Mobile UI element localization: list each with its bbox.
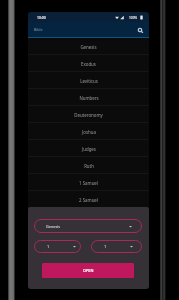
staticText: Exodus (81, 61, 96, 67)
staticText: Genesis (46, 224, 61, 229)
button[interactable]: 2 Samuel (28, 191, 149, 208)
staticText: Bible (34, 27, 43, 32)
staticText: 1 Samuel (79, 180, 98, 186)
staticText: 100% (129, 16, 138, 20)
button[interactable]: 1 Samuel (28, 174, 149, 191)
button[interactable]: Deuteronomy (28, 106, 149, 123)
staticText: Leviticus (80, 78, 98, 84)
staticText: Deuteronomy (74, 112, 103, 118)
staticText: 1 (47, 244, 50, 249)
button[interactable]: OPEN (42, 263, 134, 278)
staticText: Ruth (84, 163, 94, 169)
button[interactable]: Joshua (28, 123, 149, 140)
button[interactable]: Exodus (28, 55, 149, 72)
button[interactable]: Leviticus (28, 72, 149, 89)
button[interactable]: Ruth (28, 157, 149, 174)
button[interactable]: Genesis (34, 219, 142, 233)
staticText: Judges (82, 146, 96, 152)
button[interactable]: Judges (28, 140, 149, 157)
staticText: OPEN (83, 268, 94, 273)
button[interactable]: Genesis (28, 38, 149, 55)
button[interactable]: 1 (91, 240, 142, 253)
button[interactable]: Numbers (28, 89, 149, 106)
staticText: 2 Samuel (79, 197, 98, 203)
button[interactable]: 1 (34, 240, 81, 253)
staticText: Joshua (82, 129, 96, 135)
staticText: Numbers (79, 95, 99, 101)
staticText: 10:00 (37, 15, 46, 20)
staticText: Genesis (80, 44, 97, 50)
button[interactable]: Search (134, 24, 146, 36)
staticText: 1 (104, 244, 107, 249)
